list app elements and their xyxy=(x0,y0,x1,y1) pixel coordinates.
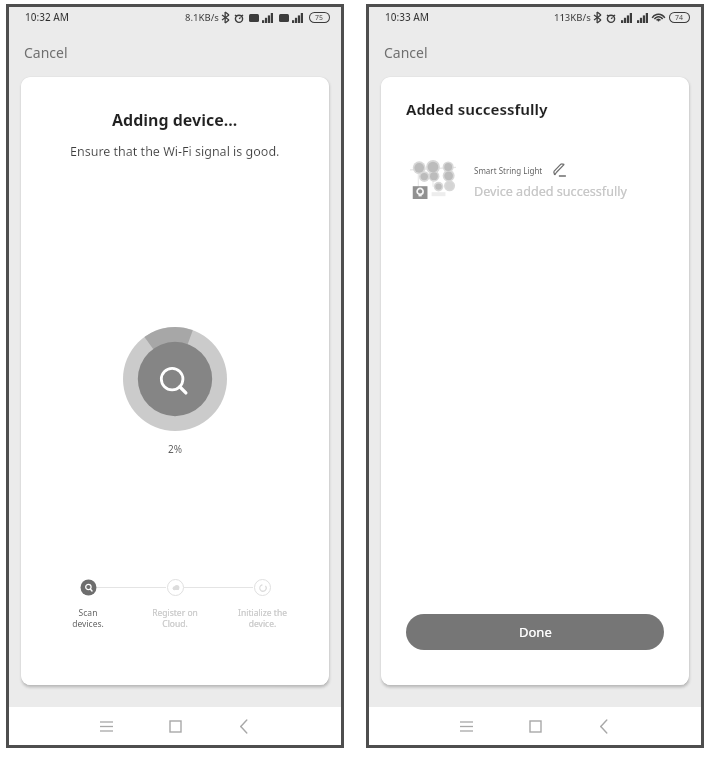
staticText: Scan devices. xyxy=(72,607,104,629)
staticText: 113KB/s xyxy=(554,11,591,24)
staticText: 8.1KB/s xyxy=(185,11,219,24)
button[interactable]: Cancel xyxy=(9,27,86,77)
staticText: Done xyxy=(519,623,552,641)
button[interactable]: Recent apps xyxy=(449,709,483,743)
button[interactable]: Back xyxy=(587,709,621,743)
staticText: Cancel xyxy=(384,43,428,62)
staticText: 2% xyxy=(168,442,183,456)
button[interactable]: Cancel xyxy=(369,27,446,77)
staticText: 10:33 AM xyxy=(385,10,429,24)
button[interactable]: Home xyxy=(518,709,552,743)
staticText: Register on Cloud. xyxy=(152,607,198,629)
staticText: 10:32 AM xyxy=(25,10,69,24)
button[interactable]: Back xyxy=(227,709,261,743)
button[interactable]: Done xyxy=(406,614,664,650)
staticText: Added successfully xyxy=(406,99,548,119)
staticText: Adding device... xyxy=(112,109,238,131)
staticText: Cancel xyxy=(24,43,68,62)
staticText: 75 xyxy=(315,13,324,22)
button[interactable]: Edit device name xyxy=(553,163,567,177)
staticText: Device added successfully xyxy=(474,183,627,200)
button[interactable]: Recent apps xyxy=(89,709,123,743)
staticText: Smart String Light xyxy=(474,165,543,176)
staticText: 74 xyxy=(675,13,684,22)
button[interactable]: Home xyxy=(158,709,192,743)
staticText: Ensure that the Wi-Fi signal is good. xyxy=(70,143,280,160)
staticText: Initialize the device. xyxy=(238,607,287,629)
